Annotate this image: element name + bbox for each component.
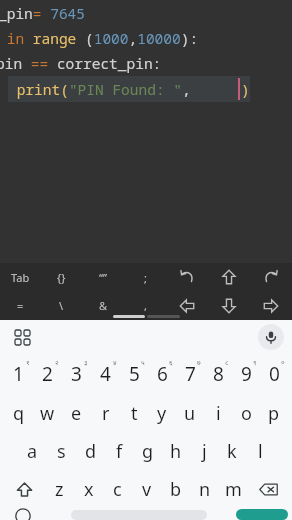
staticText: b	[170, 477, 182, 502]
staticText: t	[131, 401, 138, 426]
button[interactable]: ;	[124, 263, 166, 291]
button[interactable]: Move right	[250, 291, 292, 320]
staticText: )	[241, 79, 250, 99]
staticText: =	[17, 298, 24, 313]
staticText: f	[116, 439, 123, 464]
staticText: ५	[141, 358, 145, 368]
button[interactable]: b	[161, 470, 190, 508]
button[interactable]: u	[176, 394, 204, 432]
button[interactable]: =	[0, 291, 41, 320]
button[interactable]: o	[232, 394, 260, 432]
staticText: ९	[253, 358, 257, 368]
staticText: m	[225, 477, 242, 502]
button[interactable]: Enter	[236, 509, 288, 520]
button[interactable]: e	[62, 394, 91, 432]
button[interactable]: 9	[232, 354, 260, 394]
staticText: z	[55, 477, 64, 502]
button[interactable]: y	[148, 394, 176, 432]
staticText: ४	[113, 358, 117, 368]
staticText: i	[216, 401, 221, 426]
button[interactable]: l	[246, 432, 274, 470]
button[interactable]: {}	[41, 263, 82, 291]
staticText: p	[268, 401, 280, 426]
staticText: j	[202, 439, 207, 464]
staticText: w	[40, 401, 55, 426]
button[interactable]: v	[132, 470, 161, 508]
staticText: 0	[269, 361, 280, 387]
button[interactable]: t	[120, 394, 148, 432]
staticText: e	[71, 401, 82, 426]
button[interactable]: n	[190, 470, 219, 508]
button[interactable]: \	[41, 291, 82, 320]
staticText: ७	[197, 358, 201, 368]
staticText: 1	[13, 361, 24, 387]
staticText: a	[27, 439, 38, 464]
button[interactable]: 0	[260, 354, 288, 394]
button[interactable]: 4	[91, 354, 120, 394]
button[interactable]: f	[105, 432, 134, 470]
staticText: h	[170, 439, 182, 464]
button[interactable]: x	[74, 470, 103, 508]
staticText: o	[241, 401, 252, 426]
button[interactable]: &	[82, 291, 124, 320]
button[interactable]: k	[218, 432, 246, 470]
button[interactable]: Undo	[166, 263, 208, 291]
button[interactable]: 7	[176, 354, 204, 394]
button[interactable]: 1	[4, 354, 33, 394]
button[interactable]: 8	[204, 354, 232, 394]
button[interactable]: “”	[82, 263, 124, 291]
button[interactable]: m	[219, 470, 248, 508]
staticText: x	[84, 477, 94, 502]
button[interactable]: r	[91, 394, 120, 432]
button[interactable]: p	[260, 394, 288, 432]
staticText: ३	[84, 358, 88, 368]
button[interactable]: Move down	[208, 291, 250, 320]
staticText: v	[142, 477, 152, 502]
staticText: १	[26, 358, 30, 368]
staticText: ,	[144, 298, 147, 313]
staticText: n	[199, 477, 211, 502]
button[interactable]: Shift	[3, 470, 45, 508]
button[interactable]: a	[18, 432, 47, 470]
button[interactable]: i	[204, 394, 232, 432]
button[interactable]: h	[162, 432, 190, 470]
staticText: r	[102, 401, 110, 426]
button[interactable]: w	[33, 394, 62, 432]
button[interactable]: 3	[62, 354, 91, 394]
staticText: u	[184, 401, 196, 426]
button[interactable]: Move up	[208, 263, 250, 291]
staticText: ६	[169, 358, 173, 368]
button[interactable]: z	[45, 470, 74, 508]
button[interactable]: Voice input	[258, 324, 284, 350]
staticText: {}	[57, 270, 66, 285]
button[interactable]: d	[76, 432, 105, 470]
staticText: Tab	[11, 270, 30, 285]
button[interactable]: Redo	[250, 263, 292, 291]
button[interactable]: s	[47, 432, 76, 470]
button[interactable]: Backspace	[248, 470, 289, 508]
button[interactable]: 6	[148, 354, 176, 394]
button[interactable]: Keyboard options	[8, 323, 36, 351]
staticText: pin == correct_pin:	[0, 53, 162, 73]
button[interactable]: j	[190, 432, 218, 470]
button[interactable]: 2	[33, 354, 62, 394]
staticText: c	[113, 477, 122, 502]
button[interactable]: ,	[124, 291, 166, 320]
staticText: _pin= 7645	[0, 3, 85, 23]
staticText: l	[258, 439, 263, 464]
button[interactable]: q	[4, 394, 33, 432]
button[interactable]: c	[103, 470, 132, 508]
button[interactable]: Emoji	[4, 508, 42, 520]
staticText: “”	[99, 270, 107, 285]
button[interactable]: 5	[120, 354, 148, 394]
staticText: 2	[42, 361, 53, 387]
staticText: 5	[129, 361, 140, 387]
button[interactable]: g	[134, 432, 162, 470]
staticText: 9	[241, 361, 252, 387]
staticText: s	[57, 439, 66, 464]
staticText: k	[227, 439, 237, 464]
button[interactable]: Move left	[166, 291, 208, 320]
button[interactable]: Tab	[0, 263, 41, 291]
staticText: d	[85, 439, 97, 464]
